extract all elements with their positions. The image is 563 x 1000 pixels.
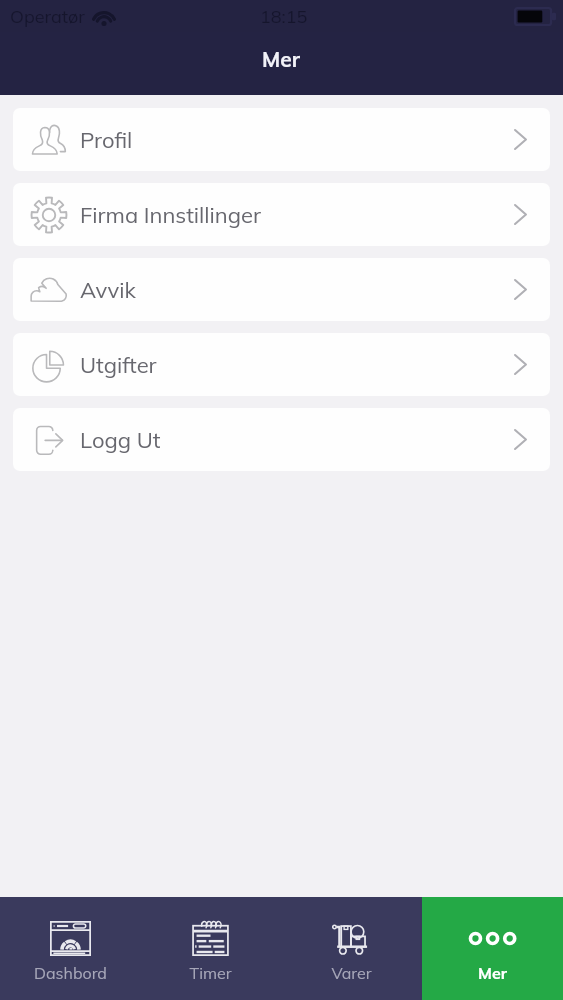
staticText: Varer — [331, 963, 372, 983]
staticText: Utgifter — [80, 351, 157, 379]
staticText: Mer — [262, 46, 301, 72]
button[interactable]: Dashbord — [0, 897, 140, 1000]
staticText: Firma Innstillinger — [80, 201, 261, 229]
button[interactable]: Profil — [13, 108, 550, 171]
staticText: Mer — [478, 963, 507, 983]
staticText: Logg Ut — [80, 426, 161, 454]
staticText: Timer — [189, 963, 232, 983]
button[interactable]: Logg Ut — [13, 408, 550, 471]
staticText: Operatør — [10, 5, 85, 28]
button[interactable]: Mer — [422, 897, 563, 1000]
staticText: Profil — [80, 126, 133, 154]
button[interactable]: Utgifter — [13, 333, 550, 396]
staticText: Avvik — [80, 276, 136, 304]
button[interactable]: Varer — [281, 897, 422, 1000]
staticText: Dashbord — [34, 963, 107, 983]
staticText: 18:15 — [260, 5, 308, 28]
button[interactable]: Timer — [140, 897, 281, 1000]
button[interactable]: Firma Innstillinger — [13, 183, 550, 246]
button[interactable]: Avvik — [13, 258, 550, 321]
